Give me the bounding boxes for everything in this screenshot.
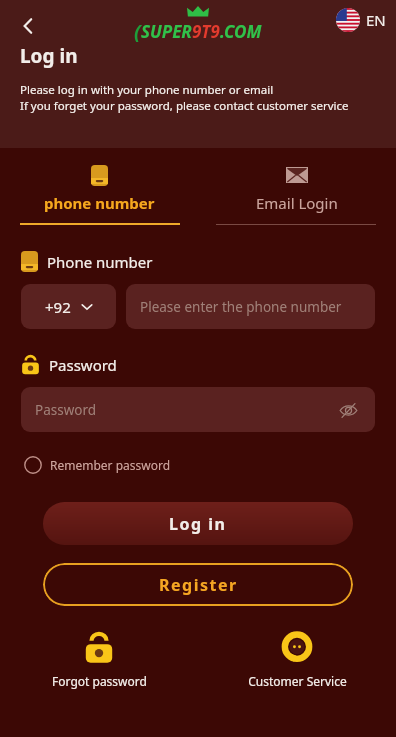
- staticText: SUPER: [141, 20, 192, 43]
- staticText: Customer Service: [248, 673, 347, 689]
- staticText: Please enter the phone number: [140, 298, 342, 316]
- staticText: If you forget your password, please cont…: [20, 98, 349, 114]
- staticText: phone number: [44, 193, 155, 213]
- staticText: +92: [45, 297, 71, 317]
- staticText: Log in: [20, 43, 78, 69]
- button[interactable]: Log in: [43, 502, 353, 545]
- button[interactable]: Toggle password visibility: [335, 397, 361, 423]
- button[interactable]: Language: [336, 8, 386, 32]
- button[interactable]: Remember password: [18, 450, 171, 480]
- staticText: Phone number: [47, 252, 153, 272]
- staticText: Register: [159, 574, 238, 596]
- staticText: Email Login: [256, 193, 338, 213]
- button[interactable]: Email Login: [198, 156, 396, 223]
- button[interactable]: Please enter the phone number: [126, 284, 375, 329]
- staticText: Password: [49, 355, 117, 375]
- staticText: EN: [366, 10, 386, 30]
- other: Language: [336, 8, 360, 32]
- button[interactable]: Back: [8, 6, 48, 46]
- staticText: Please log in with your phone number or …: [20, 82, 274, 98]
- staticText: Password: [35, 401, 97, 419]
- staticText: Forgot password: [52, 673, 147, 689]
- staticText: .COM: [220, 20, 262, 43]
- staticText: Remember password: [50, 457, 171, 473]
- button[interactable]: Customer Service: [198, 632, 396, 689]
- button[interactable]: Forgot password: [0, 632, 198, 689]
- button[interactable]: Register: [43, 563, 353, 606]
- staticText: 9T9: [192, 20, 220, 43]
- staticText: Log in: [169, 513, 227, 535]
- button[interactable]: phone number: [0, 156, 198, 223]
- staticText: (: [134, 18, 141, 45]
- button[interactable]: Password: [21, 387, 375, 432]
- button[interactable]: +92: [21, 284, 116, 329]
